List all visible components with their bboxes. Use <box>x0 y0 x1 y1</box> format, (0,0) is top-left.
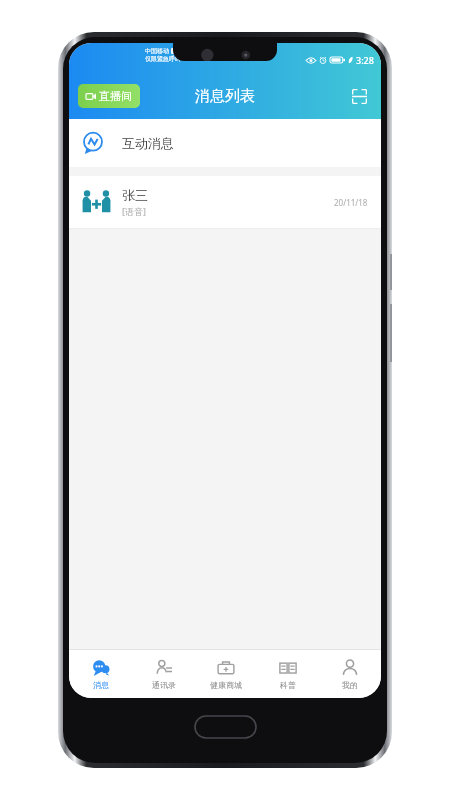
staticText: 消息 <box>93 680 109 690</box>
staticText: [语音] <box>122 205 146 217</box>
staticText: 我的 <box>342 680 358 690</box>
button[interactable]: Scan QR code <box>344 81 374 111</box>
staticText: 20/11/18 <box>334 197 368 208</box>
button[interactable]: 张三 <box>69 176 381 228</box>
button[interactable]: 互动消息 <box>69 119 381 167</box>
button[interactable]: 健康商城 <box>195 650 257 698</box>
staticText: 通讯录 <box>152 680 176 690</box>
button[interactable]: 消息 <box>69 650 132 698</box>
staticText: 消息列表 <box>195 87 255 106</box>
button[interactable]: 科普 <box>257 650 319 698</box>
staticText: 科普 <box>280 680 296 690</box>
button[interactable]: 通讯录 <box>132 650 195 698</box>
staticText: 仅限紧急呼叫 <box>145 55 181 63</box>
staticText: 健康商城 <box>210 680 242 690</box>
staticText: 互动消息 <box>122 135 174 151</box>
staticText: 张三 <box>122 187 148 203</box>
staticText: 中国移动 <box>145 47 169 55</box>
button[interactable]: 我的 <box>319 650 381 698</box>
button[interactable]: 直播间 <box>78 84 140 108</box>
staticText: 直播间 <box>99 89 132 103</box>
staticText: 3:28 <box>356 54 374 66</box>
